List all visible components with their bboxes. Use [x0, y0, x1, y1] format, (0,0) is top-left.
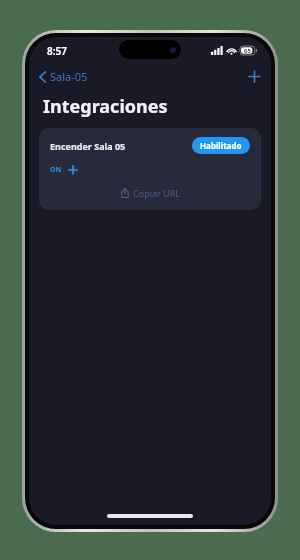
- staticText: Habilitado: [200, 140, 242, 151]
- staticText: 65: [244, 47, 251, 55]
- button[interactable]: Encender Sala 05: [39, 128, 261, 210]
- staticText: Copiar URL: [133, 187, 180, 199]
- button[interactable]: Sala-05: [29, 66, 96, 87]
- button[interactable]: Move: [67, 164, 79, 176]
- button[interactable]: Copiar URL: [115, 185, 186, 201]
- button[interactable]: Habilitado: [192, 137, 250, 154]
- staticText: ON: [50, 165, 62, 175]
- staticText: Integraciones: [43, 94, 168, 119]
- staticText: 8:57: [47, 44, 67, 58]
- staticText: Sala-05: [50, 69, 88, 84]
- button[interactable]: Add integration: [238, 67, 271, 86]
- staticText: Encender Sala 05: [50, 140, 126, 152]
